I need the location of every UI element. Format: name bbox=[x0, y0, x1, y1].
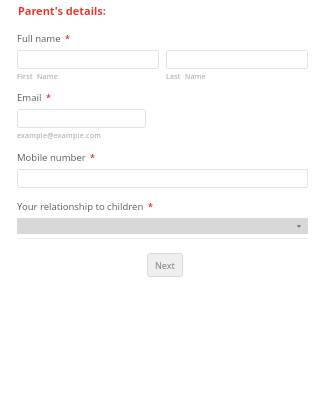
staticText: * bbox=[65, 32, 70, 44]
staticText: Full name bbox=[17, 32, 61, 45]
button[interactable] bbox=[17, 109, 146, 128]
staticText: Last Name bbox=[166, 72, 206, 82]
staticText: * bbox=[90, 151, 95, 163]
button[interactable]: Next bbox=[147, 253, 183, 277]
button[interactable] bbox=[17, 169, 308, 188]
button[interactable] bbox=[17, 50, 159, 69]
staticText: Email bbox=[17, 91, 42, 104]
staticText: Parent's details: bbox=[18, 3, 106, 18]
staticText: * bbox=[46, 91, 51, 103]
staticText: * bbox=[148, 200, 153, 212]
staticText: First Name bbox=[17, 72, 58, 82]
button[interactable] bbox=[166, 50, 308, 69]
staticText: example@example.com bbox=[17, 131, 102, 141]
button[interactable]: Select relationship bbox=[17, 218, 308, 234]
staticText: Next bbox=[155, 259, 175, 271]
staticText: Your relationship to children bbox=[17, 200, 144, 213]
staticText: Mobile number bbox=[17, 151, 86, 164]
